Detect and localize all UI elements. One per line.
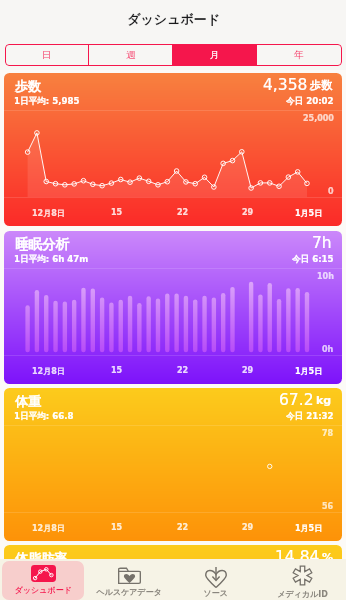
staticText: 歩数 xyxy=(15,78,41,94)
staticText: 15 xyxy=(111,208,123,217)
button[interactable]: 睡眠分析 xyxy=(4,231,342,384)
staticText: 22 xyxy=(177,523,189,532)
button[interactable]: 体脂肪率 xyxy=(4,545,342,585)
other: メディカルID xyxy=(293,565,312,586)
staticText: 歩数 xyxy=(310,78,332,92)
staticText: 12月8日 xyxy=(32,366,65,376)
staticText: 67.2 xyxy=(279,391,314,409)
staticText: 22 xyxy=(177,208,189,217)
staticText: 78 xyxy=(322,429,334,438)
staticText: ヘルスケアデータ xyxy=(96,587,162,597)
button[interactable]: 月 xyxy=(173,44,256,66)
staticText: 体脂肪率 xyxy=(15,550,67,566)
staticText: 7h xyxy=(312,234,332,252)
staticText: 12月8日 xyxy=(32,208,65,218)
staticText: 今日 20:02 xyxy=(286,96,334,107)
staticText: 29 xyxy=(242,208,254,217)
staticText: 4,358 xyxy=(263,76,308,94)
staticText: 0 xyxy=(328,187,334,196)
button[interactable]: ヘルスケアデータ xyxy=(88,561,170,600)
button[interactable]: メディカルID xyxy=(261,561,344,600)
staticText: 体重 xyxy=(15,393,41,409)
staticText: 10h xyxy=(317,272,334,281)
staticText: 15 xyxy=(111,523,123,532)
staticText: 1月5日 xyxy=(295,523,323,533)
staticText: 1月5日 xyxy=(295,366,323,376)
staticText: 日 xyxy=(42,49,52,61)
staticText: 56 xyxy=(322,502,334,511)
staticText: 14.84 xyxy=(275,548,320,566)
staticText: 睡眠分析 xyxy=(15,236,69,253)
staticText: 年 xyxy=(294,49,304,61)
staticText: 今日 6:15 xyxy=(292,254,334,265)
staticText: 12月8日 xyxy=(32,523,65,533)
button[interactable]: ダッシュボード xyxy=(2,561,84,600)
staticText: 0h xyxy=(322,345,334,354)
staticText: kg xyxy=(316,394,332,407)
button[interactable]: 週 xyxy=(89,44,172,66)
other: ダッシュボード xyxy=(31,565,56,582)
other: ヘルスケアデータ xyxy=(118,565,141,584)
staticText: メディカルID xyxy=(277,589,328,599)
button[interactable]: 歩数 xyxy=(4,73,342,226)
staticText: 1日平均: 66.8 xyxy=(14,411,74,422)
button[interactable]: 体重 xyxy=(4,388,342,541)
staticText: ダッシュボード xyxy=(14,585,72,595)
staticText: % xyxy=(322,551,334,564)
staticText: 週 xyxy=(126,49,136,61)
staticText: ダッシュボード xyxy=(127,11,220,27)
staticText: 1日平均: 5,985 xyxy=(14,96,80,107)
button[interactable]: 日 xyxy=(5,44,88,66)
staticText: 29 xyxy=(242,523,254,532)
staticText: 1月5日 xyxy=(295,208,323,218)
staticText: 15 xyxy=(111,366,123,375)
staticText: 今日 21:32 xyxy=(286,411,334,422)
staticText: 月 xyxy=(210,49,220,61)
other: ソース xyxy=(205,565,227,585)
button[interactable]: 年 xyxy=(257,44,341,66)
button[interactable]: ソース xyxy=(174,561,257,600)
staticText: 1日平均: 6h 47m xyxy=(14,254,89,265)
staticText: 29 xyxy=(242,366,254,375)
staticText: ソース xyxy=(203,588,228,598)
staticText: 25,000 xyxy=(303,114,334,123)
staticText: 22 xyxy=(177,366,189,375)
